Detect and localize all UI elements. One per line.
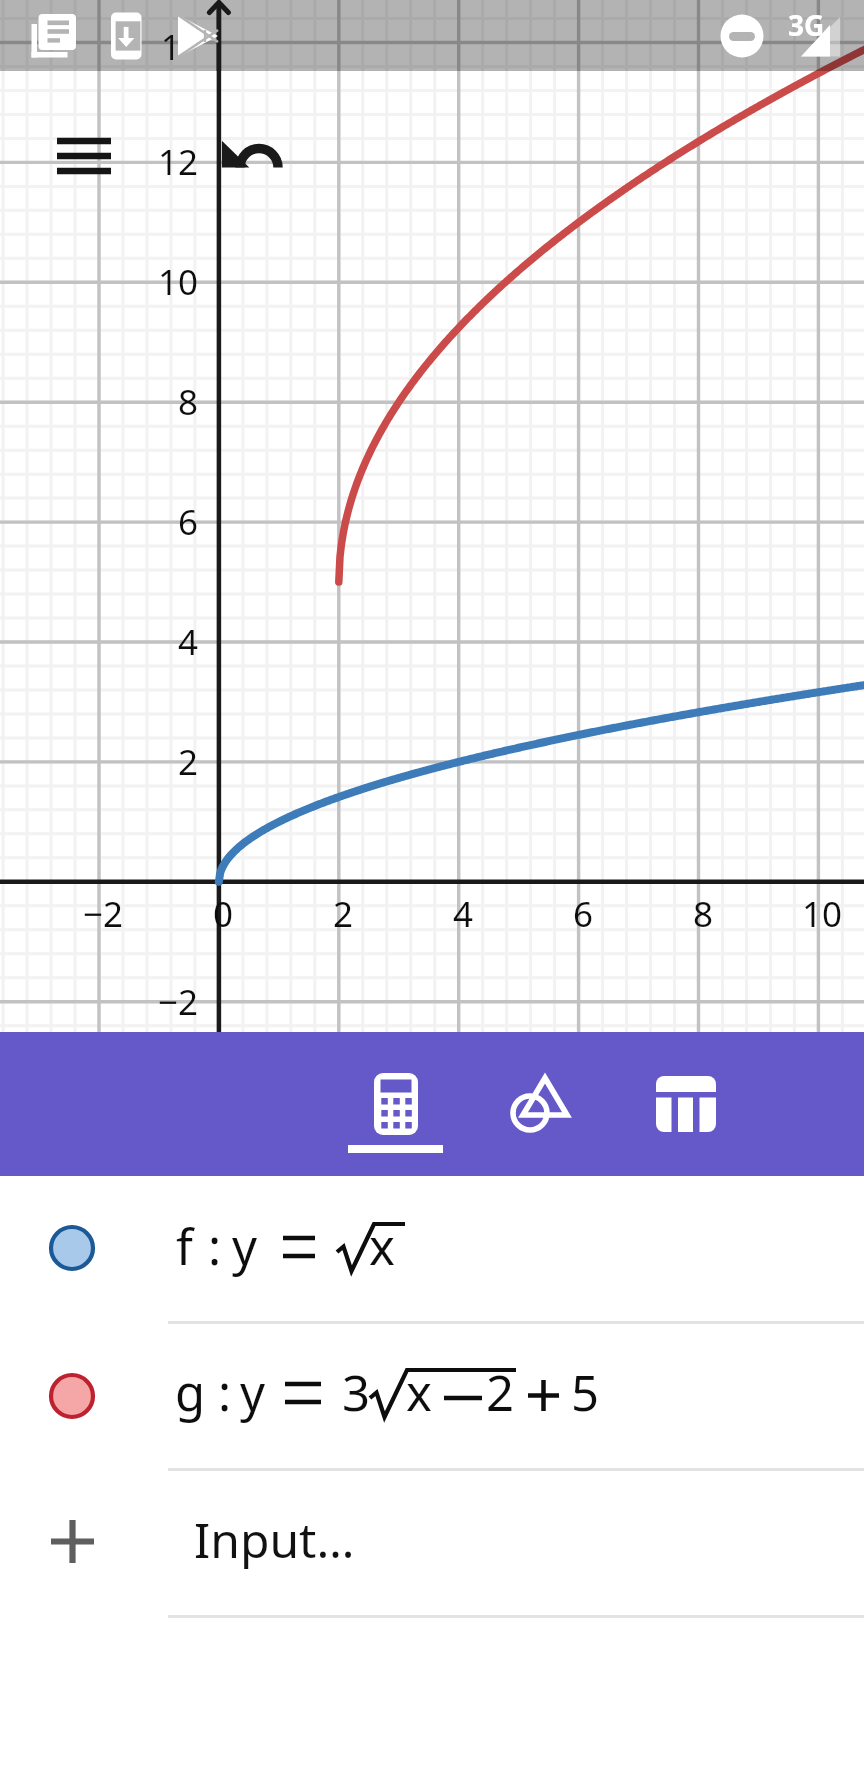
staticText: 3 [342,1359,371,1426]
staticText: 0 [213,890,234,938]
staticText: 4 [178,618,199,666]
button[interactable]: Function f [0,1176,864,1321]
staticText: 8 [178,378,199,426]
staticText: x [369,1213,395,1280]
button[interactable]: Open menu [45,122,123,192]
staticText: g [175,1359,206,1426]
staticText: 12 [158,138,199,186]
staticText: 8 [693,890,714,938]
staticText: : [218,1359,232,1426]
staticText: y [240,1359,265,1426]
button[interactable]: Function g [0,1321,864,1468]
staticText: 10 [158,258,199,306]
staticText: 10 [802,890,843,938]
button[interactable]: Table view [640,1032,732,1176]
staticText: −2 [83,890,124,938]
staticText: 2 [486,1359,515,1426]
button[interactable]: Input [0,1468,864,1615]
staticText: f [176,1213,193,1280]
button[interactable]: Undo [218,134,288,174]
staticText: 6 [573,890,594,938]
staticText: 2 [178,738,199,786]
staticText: 5 [571,1359,600,1426]
staticText: 6 [178,498,199,546]
staticText: 2 [333,890,354,938]
staticText: y [232,1213,257,1280]
staticText: : [208,1213,222,1280]
staticText: 1 [161,24,181,70]
staticText: −2 [158,978,199,1026]
staticText: Input… [194,1507,355,1572]
button[interactable]: Tools [490,1032,570,1176]
staticText: x [406,1359,432,1426]
staticText: 3G [788,6,825,44]
button[interactable]: Algebra view [347,1032,441,1176]
staticText: 4 [453,890,474,938]
